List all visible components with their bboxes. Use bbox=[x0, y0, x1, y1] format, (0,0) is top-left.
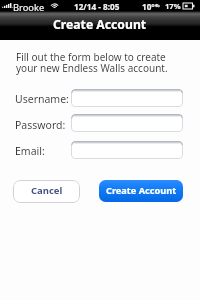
staticText: Username: bbox=[15, 92, 69, 106]
staticText: 10° bbox=[142, 1, 155, 12]
staticText: 17% bbox=[165, 1, 181, 11]
staticText: Fill out the form below to create your n… bbox=[16, 50, 169, 75]
staticText: 12/14 - 8:05 bbox=[74, 1, 120, 12]
staticText: Create Account bbox=[53, 16, 147, 33]
button[interactable]: Username: bbox=[71, 89, 183, 107]
staticText: Create Account bbox=[106, 184, 177, 197]
staticText: Brooke bbox=[13, 1, 45, 12]
staticText: Email: bbox=[15, 144, 45, 158]
staticText: Cancel bbox=[31, 184, 63, 197]
staticText: Password: bbox=[15, 118, 66, 132]
button[interactable]: Cancel bbox=[13, 180, 80, 203]
button[interactable]: Password: bbox=[71, 114, 183, 132]
button[interactable]: Create Account bbox=[99, 180, 183, 202]
button[interactable]: Email: bbox=[71, 141, 183, 159]
